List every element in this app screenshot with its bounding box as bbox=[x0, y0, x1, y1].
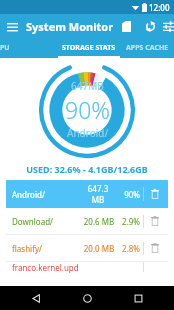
staticText: Android/ bbox=[12, 189, 82, 200]
button[interactable]: Settings bbox=[162, 14, 174, 38]
button[interactable]: STORAGE STATS bbox=[58, 38, 120, 58]
staticText: USED: 32.6% - 4.1GB/12.6GB bbox=[26, 163, 148, 175]
button[interactable]: flashify/ bbox=[6, 235, 168, 261]
button[interactable]: Home bbox=[72, 286, 102, 310]
staticText: Android/ bbox=[67, 126, 109, 140]
button[interactable]: Recent apps bbox=[123, 286, 153, 310]
button[interactable]: APPS CACHE bbox=[120, 38, 174, 58]
staticText: 2.8% bbox=[118, 243, 140, 254]
button[interactable]: Delete Android/ bbox=[148, 187, 162, 201]
staticText: Download/ bbox=[12, 216, 80, 227]
staticText: 647MB bbox=[71, 79, 104, 93]
staticText: 20.6 MB bbox=[80, 216, 118, 227]
staticText: 20.0 MB bbox=[80, 243, 118, 254]
staticText: System Monitor bbox=[26, 19, 114, 34]
button[interactable]: Delete Download/ bbox=[148, 214, 162, 228]
staticText: STORAGE STATS bbox=[62, 43, 116, 53]
staticText: APPS CACHE bbox=[126, 43, 169, 53]
button[interactable]: Download/ bbox=[6, 208, 168, 234]
button[interactable]: Delete flashify/ bbox=[148, 241, 162, 255]
staticText: franco.kernel.upd bbox=[12, 262, 140, 273]
staticText: 647.3 MB bbox=[82, 183, 114, 205]
staticText: flashify/ bbox=[12, 243, 80, 254]
button[interactable]: Android/ bbox=[6, 180, 168, 208]
button[interactable]: SD card storage bbox=[114, 14, 138, 38]
staticText: 12:00 bbox=[149, 2, 170, 13]
button[interactable]: franco.kernel.upd bbox=[6, 262, 168, 274]
button[interactable]: Open navigation menu bbox=[0, 14, 24, 38]
staticText: PU FREQUENCIES bbox=[0, 43, 58, 53]
button[interactable]: Refresh bbox=[138, 14, 162, 38]
button[interactable]: PU FREQUENCIES bbox=[0, 38, 58, 58]
staticText: 90% bbox=[114, 189, 140, 200]
staticText: 90% bbox=[65, 94, 110, 125]
button[interactable]: Back bbox=[21, 286, 51, 310]
staticText: 2.9% bbox=[118, 216, 140, 227]
